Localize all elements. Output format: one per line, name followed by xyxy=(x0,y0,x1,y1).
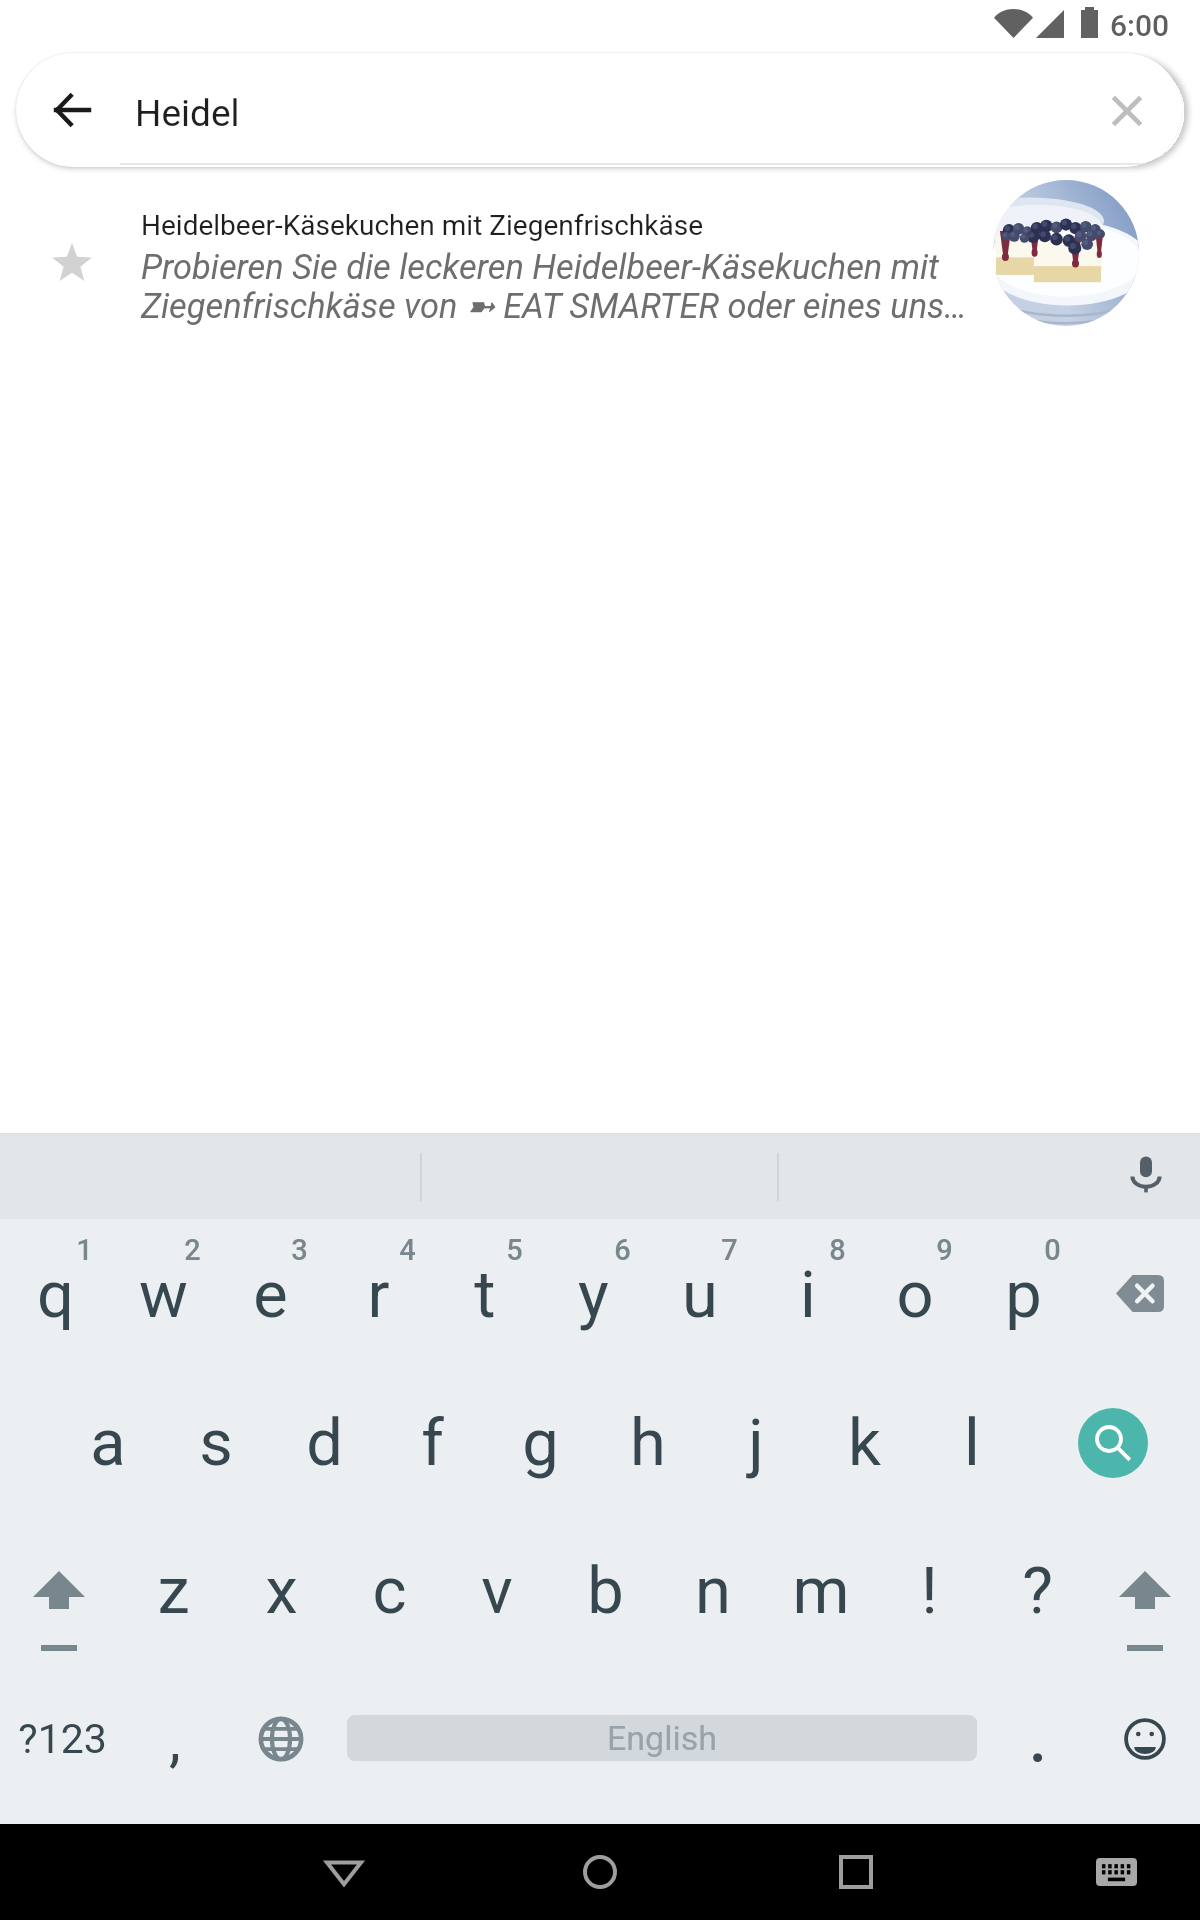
button[interactable]: Backspace xyxy=(1086,1238,1194,1348)
button[interactable]: m xyxy=(767,1536,875,1646)
staticText: 6:00 xyxy=(1110,8,1170,43)
staticText: c xyxy=(372,1553,407,1629)
button[interactable]: h xyxy=(594,1388,702,1498)
button[interactable]: 3 xyxy=(245,1195,353,1305)
staticText: Heidel xyxy=(135,92,240,135)
button[interactable]: j xyxy=(702,1388,810,1498)
button[interactable]: Home xyxy=(552,1824,648,1920)
staticText: x xyxy=(265,1553,298,1629)
staticText: , xyxy=(169,1704,181,1774)
staticText: 6 xyxy=(614,1233,631,1267)
staticText: v xyxy=(481,1553,513,1629)
staticText: g xyxy=(522,1405,559,1481)
button[interactable]: k xyxy=(810,1388,918,1498)
button[interactable]: v xyxy=(443,1536,551,1646)
button[interactable]: ! xyxy=(875,1536,983,1646)
button[interactable]: q xyxy=(1,1240,109,1350)
staticText: ! xyxy=(921,1553,938,1629)
button[interactable]: 6 xyxy=(568,1195,676,1305)
button[interactable]: Bookmark xyxy=(24,215,120,311)
staticText: p xyxy=(1005,1257,1042,1333)
staticText: u xyxy=(682,1257,718,1333)
button[interactable]: Back xyxy=(296,1824,392,1920)
button[interactable]: Shift xyxy=(5,1549,113,1679)
staticText: English xyxy=(607,1718,718,1758)
button[interactable]: 9 xyxy=(890,1195,998,1305)
staticText: Probieren Sie die leckeren Heidelbeer-Kä… xyxy=(141,247,967,326)
staticText: 4 xyxy=(399,1233,416,1267)
staticText: 8 xyxy=(829,1233,846,1267)
staticText: ? xyxy=(1022,1553,1053,1629)
button[interactable]: Emoji xyxy=(1091,1685,1199,1793)
button[interactable]: Keyboard xyxy=(1068,1824,1164,1920)
staticText: t xyxy=(474,1257,496,1333)
button[interactable]: English xyxy=(347,1715,977,1761)
button[interactable]: 0 xyxy=(998,1195,1106,1305)
button[interactable]: Change language xyxy=(227,1685,335,1793)
staticText: h xyxy=(630,1405,666,1481)
button[interactable]: 7 xyxy=(675,1195,783,1305)
button[interactable]: c xyxy=(335,1536,443,1646)
button[interactable]: . xyxy=(984,1680,1092,1790)
staticText: b xyxy=(587,1553,624,1629)
staticText: n xyxy=(695,1553,731,1629)
staticText: i xyxy=(800,1257,816,1333)
button[interactable]: x xyxy=(227,1536,335,1646)
button[interactable]: t xyxy=(431,1240,539,1350)
staticText: k xyxy=(848,1405,881,1481)
button[interactable]: d xyxy=(270,1388,378,1498)
button[interactable]: p xyxy=(969,1240,1077,1350)
button[interactable]: y xyxy=(539,1240,647,1350)
staticText: 7 xyxy=(721,1233,738,1267)
staticText: ?123 xyxy=(18,1715,107,1763)
button[interactable]: a xyxy=(54,1388,162,1498)
button[interactable]: n xyxy=(659,1536,767,1646)
staticText: r xyxy=(367,1257,390,1333)
button[interactable]: Search xyxy=(1059,1389,1167,1497)
button[interactable]: 2 xyxy=(138,1195,246,1305)
button[interactable]: 8 xyxy=(783,1195,891,1305)
staticText: Heidelbeer-Käsekuchen mit Ziegenfrischkä… xyxy=(141,209,703,242)
staticText: 2 xyxy=(184,1233,201,1267)
staticText: 1 xyxy=(76,1233,93,1267)
button[interactable]: 4 xyxy=(353,1195,461,1305)
button[interactable]: g xyxy=(486,1388,594,1498)
staticText: . xyxy=(1027,1688,1049,1782)
button[interactable]: w xyxy=(109,1240,217,1350)
button[interactable]: ? xyxy=(983,1536,1091,1646)
staticText: w xyxy=(139,1257,188,1333)
staticText: j xyxy=(748,1405,764,1481)
staticText: q xyxy=(37,1257,74,1333)
button[interactable]: 1 xyxy=(30,1195,138,1305)
staticText: z xyxy=(157,1553,190,1629)
button[interactable]: , xyxy=(121,1684,229,1794)
button[interactable]: f xyxy=(378,1388,486,1498)
staticText: 3 xyxy=(291,1233,308,1267)
button[interactable]: z xyxy=(119,1536,227,1646)
button[interactable]: u xyxy=(646,1240,754,1350)
button[interactable]: b xyxy=(551,1536,659,1646)
button[interactable]: l xyxy=(918,1388,1026,1498)
staticText: 0 xyxy=(1044,1233,1061,1267)
staticText: 5 xyxy=(506,1233,523,1267)
button[interactable]: Shift xyxy=(1091,1549,1199,1679)
button[interactable]: o xyxy=(861,1240,969,1350)
button[interactable]: Recents xyxy=(808,1824,904,1920)
button[interactable]: 5 xyxy=(460,1195,568,1305)
button[interactable]: s xyxy=(162,1388,270,1498)
button[interactable]: ?123 xyxy=(8,1684,116,1794)
staticText: a xyxy=(90,1405,126,1481)
button[interactable]: Clear xyxy=(1078,66,1166,154)
button[interactable]: Voice input xyxy=(1097,1133,1193,1219)
staticText: 9 xyxy=(936,1233,953,1267)
staticText: s xyxy=(199,1405,233,1481)
staticText: d xyxy=(306,1405,343,1481)
button[interactable]: e xyxy=(216,1240,324,1350)
button[interactable]: r xyxy=(324,1240,432,1350)
button[interactable]: Back xyxy=(28,66,116,154)
button[interactable]: Bookmark xyxy=(0,173,1200,333)
staticText: f xyxy=(421,1405,444,1481)
staticText: l xyxy=(964,1405,980,1481)
staticText: e xyxy=(253,1257,288,1333)
button[interactable]: i xyxy=(754,1240,862,1350)
